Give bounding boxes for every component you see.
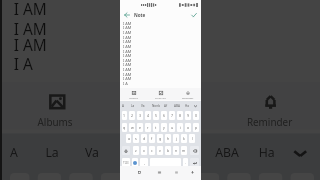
button[interactable]: Reminder <box>174 88 201 100</box>
staticText: I A <box>123 81 128 86</box>
button[interactable]: ABA <box>207 133 247 169</box>
staticText: 5 <box>155 113 158 118</box>
staticText: I A <box>14 54 34 74</box>
staticText: u <box>171 125 174 130</box>
button[interactable]: . <box>183 158 188 167</box>
button[interactable]: Ha <box>182 101 192 110</box>
button[interactable]: 6 <box>164 173 188 180</box>
button[interactable]: Va <box>73 133 113 169</box>
button[interactable]: Back <box>173 169 180 176</box>
staticText: A <box>10 145 18 161</box>
button[interactable]: 3 <box>137 111 143 120</box>
button[interactable]: u <box>169 123 175 132</box>
staticText: w <box>131 125 134 130</box>
button[interactable]: Nonb <box>124 133 164 169</box>
staticText: I AM <box>123 30 132 35</box>
button[interactable]: 7 <box>195 173 219 180</box>
button[interactable]: To-do list <box>147 88 174 100</box>
staticText: f <box>151 136 153 141</box>
button[interactable]: Af <box>161 101 171 110</box>
button[interactable]: d <box>141 134 147 143</box>
staticText: p <box>195 125 198 130</box>
button[interactable]: x <box>141 146 147 155</box>
button[interactable]: a <box>126 134 131 143</box>
button[interactable]: y <box>161 123 167 132</box>
button[interactable]: Reminder <box>215 82 320 129</box>
button[interactable]: e <box>137 123 143 132</box>
button[interactable]: f <box>149 134 155 143</box>
button[interactable]: n <box>173 146 179 155</box>
staticText: Ha <box>259 145 279 161</box>
button[interactable]: More suggestions <box>192 101 198 110</box>
button[interactable]: A <box>118 101 128 110</box>
button[interactable]: s <box>133 134 139 143</box>
button[interactable]: 6 <box>161 111 167 120</box>
button[interactable]: r <box>145 123 151 132</box>
button[interactable]: La <box>128 101 138 110</box>
staticText: To-do list <box>140 114 184 126</box>
button[interactable]: q <box>122 123 127 132</box>
button[interactable]: 1 <box>122 111 127 120</box>
button[interactable]: shift <box>122 146 130 155</box>
button[interactable]: 4 <box>145 111 151 120</box>
button[interactable]: v <box>157 146 163 155</box>
button[interactable]: h <box>165 134 171 143</box>
staticText: ?123 <box>123 161 129 165</box>
button[interactable]: enter <box>190 158 199 167</box>
button[interactable]: Af <box>164 133 203 169</box>
button[interactable]: l <box>189 134 195 143</box>
button[interactable]: Recent apps <box>136 169 143 176</box>
button[interactable]: 9 <box>185 111 191 120</box>
button[interactable]: 7 <box>169 111 175 120</box>
staticText: Af <box>164 104 168 108</box>
button[interactable]: Ha <box>247 133 286 169</box>
button[interactable]: ?123 <box>122 158 130 167</box>
button[interactable]: t <box>153 123 159 132</box>
button[interactable]: Albums <box>2 82 109 129</box>
staticText: 7 <box>171 113 174 118</box>
staticText: La <box>131 104 135 108</box>
button[interactable]: Va <box>138 101 148 110</box>
button[interactable]: Nonb <box>151 101 161 110</box>
button[interactable]: Back <box>123 11 131 19</box>
button[interactable]: To-do list <box>109 82 215 129</box>
button[interactable]: ABA <box>172 101 182 110</box>
button[interactable]: p <box>193 123 199 132</box>
button[interactable]: More suggestions <box>286 133 310 169</box>
button[interactable]: k <box>181 134 187 143</box>
button[interactable]: backspace <box>190 146 199 155</box>
button[interactable]: c <box>149 146 155 155</box>
button[interactable]: j <box>173 134 179 143</box>
button[interactable]: Switch language <box>132 158 138 167</box>
staticText: I AM <box>123 62 132 67</box>
button[interactable]: , <box>140 158 148 167</box>
button[interactable]: Hide keyboard <box>189 169 196 176</box>
button[interactable]: o <box>185 123 191 132</box>
button[interactable]: i <box>177 123 183 132</box>
button[interactable]: 2 <box>129 111 135 120</box>
button[interactable]: Albums <box>120 88 147 100</box>
button[interactable]: m <box>181 146 187 155</box>
button[interactable]: La <box>34 133 73 169</box>
button[interactable]: Home <box>156 169 163 176</box>
button[interactable]: 0 <box>193 111 199 120</box>
button[interactable]: A <box>0 133 34 169</box>
button[interactable]: w <box>129 123 135 132</box>
button[interactable]: 5 <box>153 111 159 120</box>
button[interactable]: Save note <box>190 11 198 19</box>
staticText: I AM <box>123 44 132 49</box>
button[interactable]: g <box>157 134 163 143</box>
button[interactable]: 4 <box>101 173 124 180</box>
button[interactable]: 5 <box>132 173 156 180</box>
button[interactable]: 8 <box>177 111 183 120</box>
staticText: c <box>151 148 153 153</box>
button[interactable]: b <box>165 146 171 155</box>
button[interactable]: z <box>133 146 139 155</box>
